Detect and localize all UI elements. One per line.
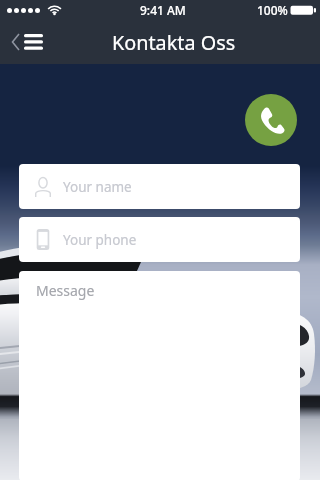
staticText: 100% xyxy=(257,2,288,18)
button[interactable]: Call xyxy=(245,94,297,146)
button[interactable]: Your name xyxy=(19,164,300,209)
staticText: Kontakta Oss xyxy=(112,29,236,56)
staticText: Message xyxy=(36,281,95,300)
button[interactable]: Your phone xyxy=(19,217,300,262)
button[interactable]: Menu xyxy=(0,20,52,64)
staticText: Your name xyxy=(63,178,132,196)
staticText: 9:41 AM xyxy=(140,2,186,18)
staticText: Your phone xyxy=(63,231,137,249)
button[interactable]: Message xyxy=(19,271,300,480)
